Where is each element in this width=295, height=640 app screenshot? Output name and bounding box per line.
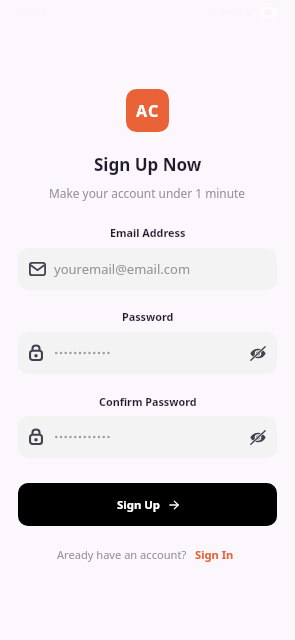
button[interactable]: youremail@email.com xyxy=(18,248,277,290)
staticText: Sign Up xyxy=(117,497,161,513)
staticText: Make your account under 1 minute xyxy=(49,185,246,201)
button[interactable]: Sign Up xyxy=(18,483,277,526)
staticText: 65 xyxy=(264,8,273,18)
staticText: AC xyxy=(136,100,160,122)
staticText: Aready have an account? xyxy=(57,547,187,562)
button[interactable]: Show password xyxy=(18,332,277,374)
staticText: youremail@email.com xyxy=(54,260,191,278)
staticText: Confirm Password xyxy=(99,394,197,409)
button[interactable]: Sign In xyxy=(195,547,234,562)
staticText: Password xyxy=(122,309,174,324)
button[interactable]: Show password xyxy=(18,416,277,458)
button[interactable]: Show password xyxy=(249,345,266,362)
staticText: Email Address xyxy=(110,225,186,240)
staticText: Sign In xyxy=(195,547,234,562)
button[interactable]: Show password xyxy=(249,429,266,446)
staticText: Sign Up Now xyxy=(94,153,202,176)
